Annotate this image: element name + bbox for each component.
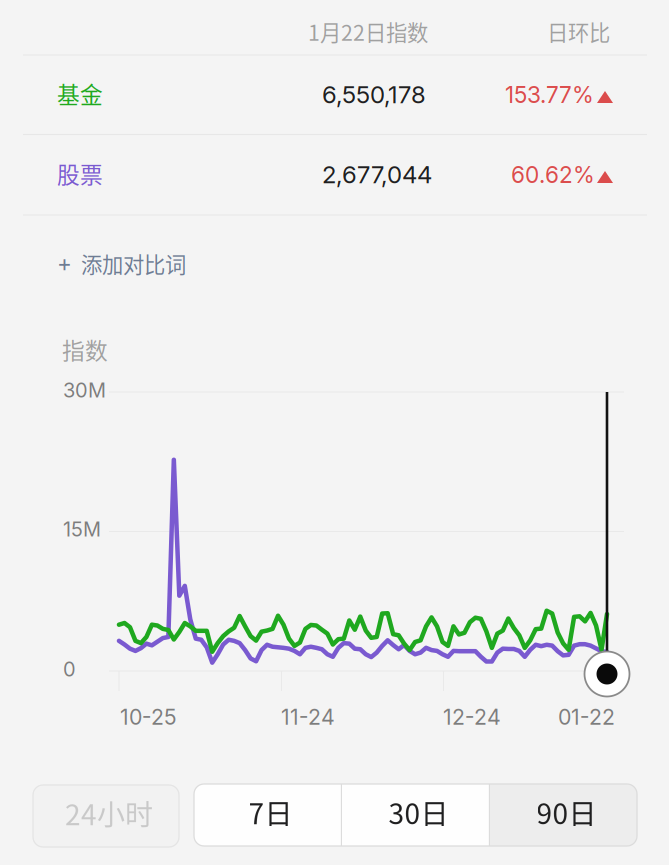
button[interactable]: 24小时 [33, 785, 179, 847]
staticText: 01-22 [558, 704, 615, 730]
button[interactable]: + [57, 248, 186, 279]
staticText: 添加对比词 [81, 248, 186, 279]
staticText: 股票 [57, 157, 103, 190]
button[interactable]: 90日 [490, 784, 637, 846]
staticText: 日环比 [547, 16, 610, 47]
staticText: 12-24 [443, 704, 501, 730]
staticText: 60.62% [511, 161, 595, 188]
button[interactable]: 30日 [342, 784, 489, 846]
staticText: 10-25 [120, 704, 177, 730]
staticText: 153.77% [505, 81, 594, 108]
staticText: 7日 [248, 792, 292, 832]
staticText: 1月22日指数 [308, 16, 428, 47]
staticText: 11-24 [281, 704, 335, 730]
staticText: 30M [63, 378, 106, 402]
staticText: 指数 [62, 333, 108, 366]
staticText: 15M [63, 517, 101, 541]
staticText: 基金 [57, 77, 103, 110]
staticText: 30日 [388, 792, 448, 832]
staticText: 90日 [536, 792, 596, 832]
staticText: 0 [63, 657, 76, 681]
button[interactable]: 7日 [194, 784, 341, 846]
staticText: 2,677,044 [322, 160, 432, 189]
staticText: + [57, 250, 72, 277]
staticText: 6,550,178 [322, 80, 426, 109]
staticText: 24小时 [65, 793, 153, 833]
